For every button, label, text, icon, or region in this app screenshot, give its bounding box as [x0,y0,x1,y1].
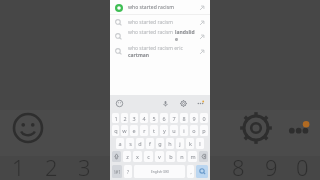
button[interactable]: g [156,138,164,149]
button[interactable]: f [146,138,154,149]
button[interactable]: x [133,151,142,162]
button[interactable]: Shift [112,151,121,162]
staticText: English (UK) [151,170,169,174]
button[interactable]: ? [124,165,132,178]
other: More options [283,113,317,147]
button[interactable]: v [155,151,164,162]
button[interactable]: m [188,151,197,162]
button[interactable]: who started racism [110,0,210,14]
staticText: j [179,140,181,147]
button[interactable]: k [186,138,194,149]
staticText: b [169,153,173,160]
staticText: 3 [132,115,136,122]
button[interactable]: , [187,165,194,178]
other: Emoji [11,111,45,145]
staticText: 9 [192,115,196,122]
staticText: f [149,140,151,147]
staticText: 4 [142,115,146,122]
button[interactable]: 1 [112,113,119,123]
button[interactable]: z [123,151,131,162]
staticText: 2 [45,152,58,180]
button[interactable]: r [140,125,148,136]
button[interactable]: !#1 [112,165,122,178]
staticText: 5 [152,115,156,122]
staticText: v [158,153,161,160]
button[interactable]: Search [196,165,208,178]
staticText: r [143,127,146,134]
staticText: x [136,153,139,160]
button[interactable]: t [150,125,158,136]
button[interactable]: 4 [140,113,148,123]
button[interactable]: u [170,125,178,136]
staticText: 1 [12,152,25,180]
staticText: cartman [128,52,150,59]
button[interactable]: More options [195,98,206,109]
button[interactable]: 9 [190,113,198,123]
button[interactable]: who started racism [110,15,210,29]
staticText: l [199,140,201,147]
staticText: u [172,127,176,134]
button[interactable]: i [180,125,188,136]
staticText: 6 [162,115,166,122]
staticText: i [183,127,185,134]
button[interactable]: h [166,138,174,149]
button[interactable]: Insert suggestion [197,18,206,27]
staticText: k [189,140,192,147]
button[interactable]: 5 [150,113,158,123]
button[interactable]: d [136,138,144,149]
button[interactable]: s [126,138,134,149]
button[interactable]: 7 [170,113,178,123]
staticText: landslide [175,29,197,43]
button[interactable]: 3 [130,113,138,123]
staticText: 7 [172,115,176,122]
button[interactable]: Insert suggestion [197,32,206,41]
button[interactable]: Voice input [160,98,171,109]
staticText: who started racism [128,19,173,26]
button[interactable]: e [130,125,138,136]
button[interactable]: c [144,151,153,162]
staticText: 3 [78,152,91,180]
other: Settings [241,113,271,143]
staticText: c [147,153,150,160]
staticText: who started racism [128,29,175,36]
button[interactable]: q [112,125,119,136]
staticText: y [163,127,166,134]
button[interactable]: who started racism eric [110,43,210,60]
staticText: 8 [182,115,186,122]
button[interactable]: 8 [180,113,188,123]
staticText: t [153,127,155,134]
button[interactable]: p [200,125,208,136]
staticText: g [158,140,162,147]
button[interactable]: o [190,125,198,136]
staticText: q [114,127,118,134]
button[interactable]: y [160,125,168,136]
button[interactable]: l [196,138,204,149]
button[interactable]: b [166,151,175,162]
button[interactable]: w [121,125,128,136]
button[interactable]: 0 [200,113,208,123]
staticText: , [190,169,192,175]
button[interactable]: Settings [178,98,189,109]
button[interactable]: English (UK) [134,165,185,178]
button[interactable]: n [177,151,186,162]
staticText: a [118,140,122,147]
staticText: p [202,127,206,134]
staticText: z [126,153,129,160]
button[interactable]: 6 [160,113,168,123]
button[interactable]: 2 [121,113,128,123]
staticText: 8 [232,152,245,180]
staticText: w [122,127,127,134]
button[interactable]: Emoji [114,98,125,109]
button[interactable]: j [176,138,184,149]
button[interactable]: Insert suggestion [197,3,206,12]
button[interactable]: Backspace [199,151,208,162]
button[interactable]: who started racism [110,29,210,43]
button[interactable]: a [116,138,124,149]
staticText: e [132,127,136,134]
staticText: o [192,127,196,134]
staticText: 9 [265,152,278,180]
staticText: ? [127,169,129,175]
button[interactable]: Insert suggestion [197,47,206,56]
staticText: 1 [114,115,118,122]
staticText: 0 [296,152,309,180]
